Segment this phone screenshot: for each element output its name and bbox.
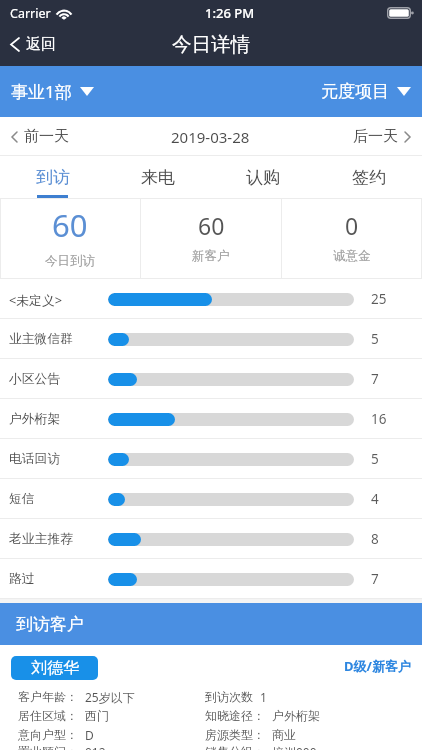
staticText: 房源类型： [205, 727, 265, 742]
staticText: 2019-03-28 [171, 127, 250, 147]
staticText: 返回 [26, 35, 56, 54]
staticText: Carrier [10, 5, 51, 22]
staticText: 认购 [246, 167, 280, 188]
button[interactable]: 签约 [316, 156, 422, 198]
staticText: 签约 [352, 167, 386, 188]
staticText: 诚意金 [333, 248, 371, 264]
staticText: 012 [85, 744, 106, 750]
staticText: 前一天 [24, 127, 69, 146]
staticText: 到访次数 [205, 689, 253, 704]
staticText: 来电 [141, 167, 175, 188]
staticText: 8 [371, 530, 379, 548]
staticText: 西门 [85, 708, 109, 723]
staticText: 培训000 [272, 744, 317, 750]
staticText: 刘德华 [31, 658, 79, 678]
staticText: D级/新客户 [344, 657, 411, 675]
button[interactable]: 60 [0, 198, 140, 279]
staticText: <未定义> [9, 291, 63, 308]
button[interactable]: 到访 [0, 156, 105, 198]
staticText: 今日详情 [172, 32, 250, 57]
staticText: 5 [371, 330, 379, 348]
staticText: 0 [345, 210, 359, 241]
button[interactable]: 业主微信群 [0, 319, 422, 359]
button[interactable]: 前一天 [0, 120, 83, 153]
staticText: 户外桁架 [272, 708, 320, 723]
staticText: 后一天 [353, 127, 398, 146]
staticText: 25岁以下 [85, 689, 135, 705]
staticText: 到访客户 [16, 614, 84, 635]
staticText: 居住区域： [18, 708, 78, 723]
staticText: 路过 [9, 571, 35, 587]
staticText: 5 [371, 450, 379, 468]
button[interactable]: 60 [141, 198, 281, 279]
staticText: 置业顾问： [18, 744, 78, 750]
staticText: 今日到访 [45, 253, 95, 269]
staticText: 户外桁架 [9, 411, 61, 427]
staticText: D [85, 727, 94, 743]
button[interactable]: 电话回访 [0, 439, 422, 479]
staticText: 知晓途径： [205, 708, 265, 723]
staticText: 25 [371, 290, 387, 308]
button[interactable]: 刘德华 [11, 656, 98, 680]
staticText: 4 [371, 490, 379, 508]
staticText: 事业1部 [11, 80, 72, 103]
button[interactable]: 后一天 [339, 120, 422, 153]
staticText: 元度项目 [321, 81, 389, 102]
button[interactable]: 返回 [0, 29, 70, 60]
staticText: 60 [52, 204, 88, 246]
staticText: 业主微信群 [9, 331, 73, 347]
staticText: 电话回访 [9, 451, 61, 467]
button[interactable]: 老业主推荐 [0, 519, 422, 559]
button[interactable]: 路过 [0, 559, 422, 599]
button[interactable]: 户外桁架 [0, 399, 422, 439]
button[interactable]: 小区公告 [0, 359, 422, 399]
staticText: 短信 [9, 491, 35, 507]
button[interactable]: 0 [282, 198, 422, 279]
button[interactable]: 元度项目 [310, 73, 422, 110]
staticText: 小区公告 [9, 371, 61, 387]
staticText: 到访 [36, 167, 70, 188]
staticText: 老业主推荐 [9, 531, 73, 547]
staticText: 意向户型： [18, 727, 78, 742]
button[interactable]: 短信 [0, 479, 422, 519]
button[interactable]: 事业1部 [0, 72, 105, 111]
staticText: 1 [260, 689, 267, 705]
staticText: 新客户 [192, 248, 230, 264]
button[interactable]: 来电 [105, 156, 210, 198]
staticText: 7 [371, 370, 379, 388]
staticText: 60 [198, 210, 225, 241]
staticText: 16 [371, 410, 387, 428]
staticText: 7 [371, 570, 379, 588]
staticText: 客户年龄： [18, 689, 78, 704]
button[interactable]: <未定义> [0, 279, 422, 319]
staticText: 1:26 PM [205, 4, 255, 22]
button[interactable]: 认购 [210, 156, 316, 198]
staticText: 商业 [272, 727, 296, 742]
staticText: 销售分组： [205, 744, 265, 750]
